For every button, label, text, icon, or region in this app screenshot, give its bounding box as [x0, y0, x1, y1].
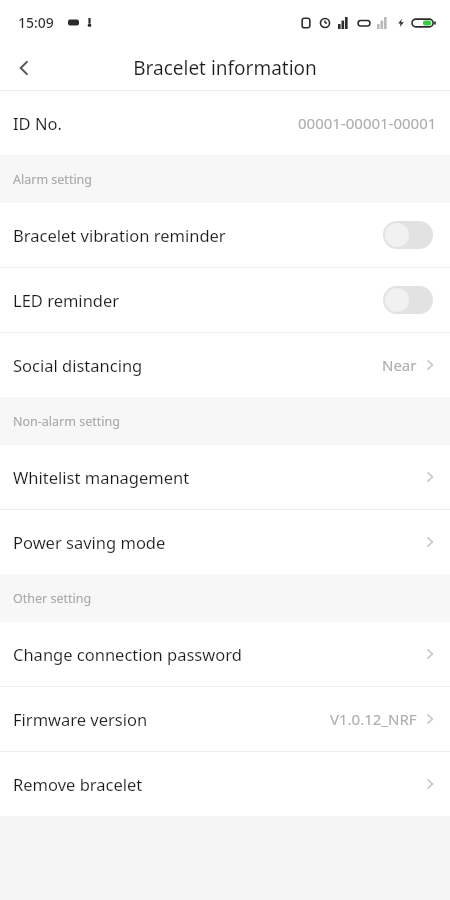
button[interactable]: Firmware version [0, 687, 450, 751]
other: LED reminder toggle, off [383, 286, 433, 314]
staticText: Social distancing [13, 354, 143, 376]
staticText: Change connection password [13, 643, 242, 665]
button[interactable]: ID No. [0, 91, 450, 155]
staticText: Other setting [13, 590, 92, 607]
staticText: Power saving mode [13, 531, 166, 553]
staticText: Near [382, 355, 417, 375]
staticText: Firmware version [13, 708, 148, 730]
button[interactable]: Change connection password [0, 622, 450, 686]
staticText: Alarm setting [13, 171, 93, 188]
staticText: Bracelet information [133, 55, 317, 81]
staticText: Bracelet vibration reminder [13, 224, 226, 246]
button[interactable]: Social distancing [0, 333, 450, 397]
staticText: V1.0.12_NRF [330, 709, 417, 729]
staticText: ID No. [13, 112, 62, 134]
staticText: 15:09 [18, 13, 54, 32]
button[interactable]: Whitelist management [0, 445, 450, 509]
button[interactable]: Back [0, 45, 48, 90]
staticText: Whitelist management [13, 466, 190, 488]
staticText: LED reminder [13, 289, 120, 311]
staticText: Remove bracelet [13, 773, 143, 795]
button[interactable]: Power saving mode [0, 510, 450, 574]
staticText: Non-alarm setting [13, 413, 120, 430]
button[interactable]: Remove bracelet [0, 752, 450, 816]
button[interactable]: LED reminder [0, 268, 450, 332]
button[interactable]: Bracelet vibration reminder [0, 203, 450, 267]
staticText: 00001-00001-00001 [298, 113, 437, 133]
other: Bracelet vibration reminder toggle, off [383, 221, 433, 249]
